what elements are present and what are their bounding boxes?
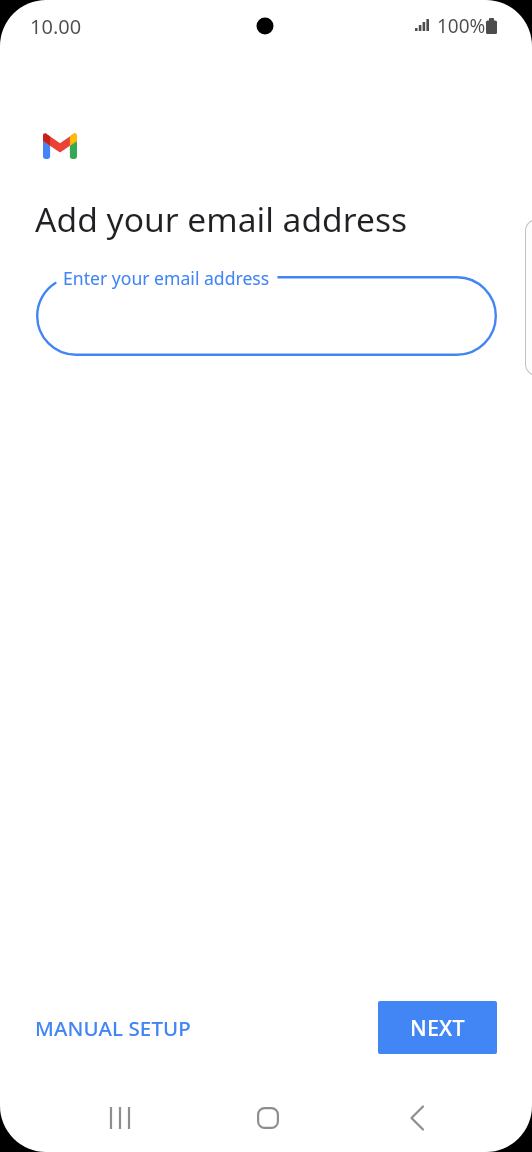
button[interactable]: Recent apps <box>84 1088 156 1148</box>
button[interactable]: Enter your email address <box>36 276 497 356</box>
staticText: Add your email address <box>35 196 408 242</box>
button[interactable]: Back <box>376 1088 448 1148</box>
button[interactable]: Home <box>232 1088 304 1148</box>
button[interactable]: NEXT <box>378 1001 497 1054</box>
staticText: Enter your email address <box>63 266 270 290</box>
button[interactable]: MANUAL SETUP <box>23 1006 203 1050</box>
staticText: MANUAL SETUP <box>35 1014 191 1042</box>
staticText: 100% <box>437 13 486 39</box>
staticText: 10.00 <box>30 13 82 40</box>
staticText: NEXT <box>410 1013 465 1042</box>
